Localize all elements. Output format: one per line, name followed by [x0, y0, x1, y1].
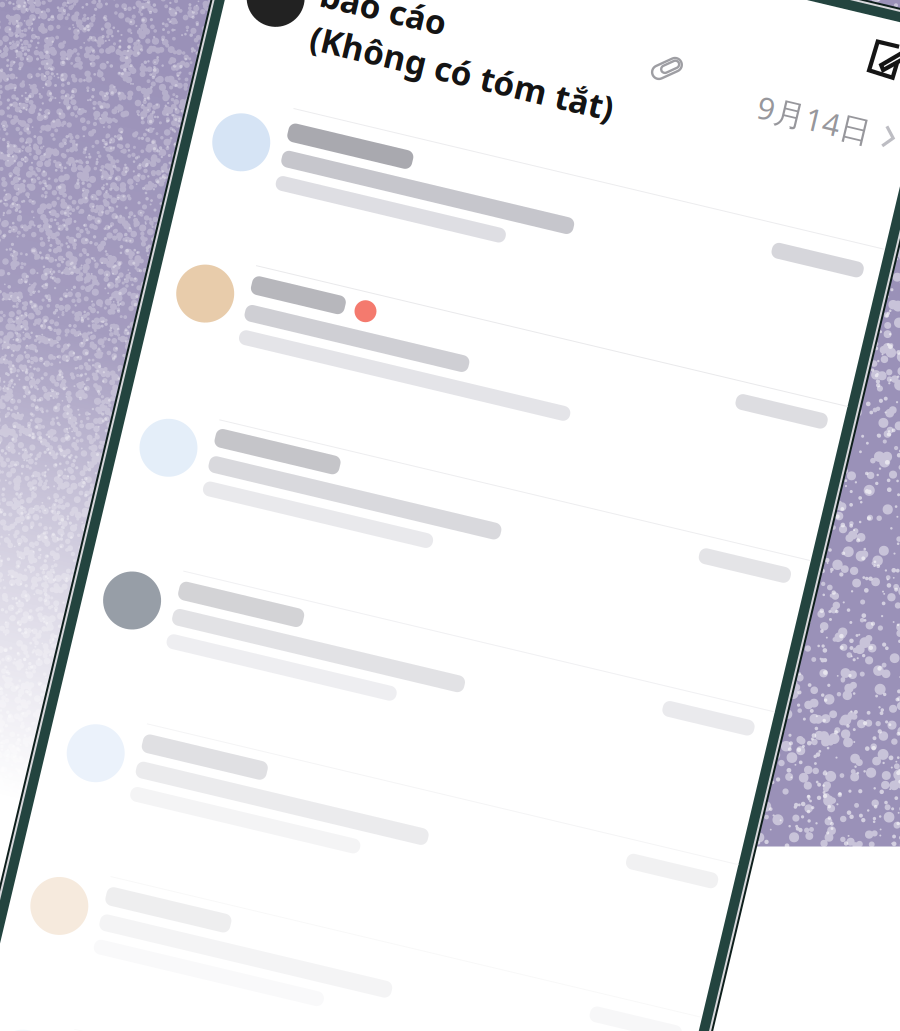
staticText: (Không có tóm tắt): [165, 58, 476, 102]
button[interactable]: báo cáo: [73, 0, 773, 154]
button[interactable]: [73, 468, 773, 625]
staticText: báo cáo: [165, 13, 294, 58]
button[interactable]: [73, 154, 773, 311]
button[interactable]: [73, 625, 773, 782]
button[interactable]: [73, 782, 773, 939]
staticText: 9月14日: [616, 23, 732, 64]
button[interactable]: [73, 311, 773, 468]
button[interactable]: [73, 939, 773, 1031]
